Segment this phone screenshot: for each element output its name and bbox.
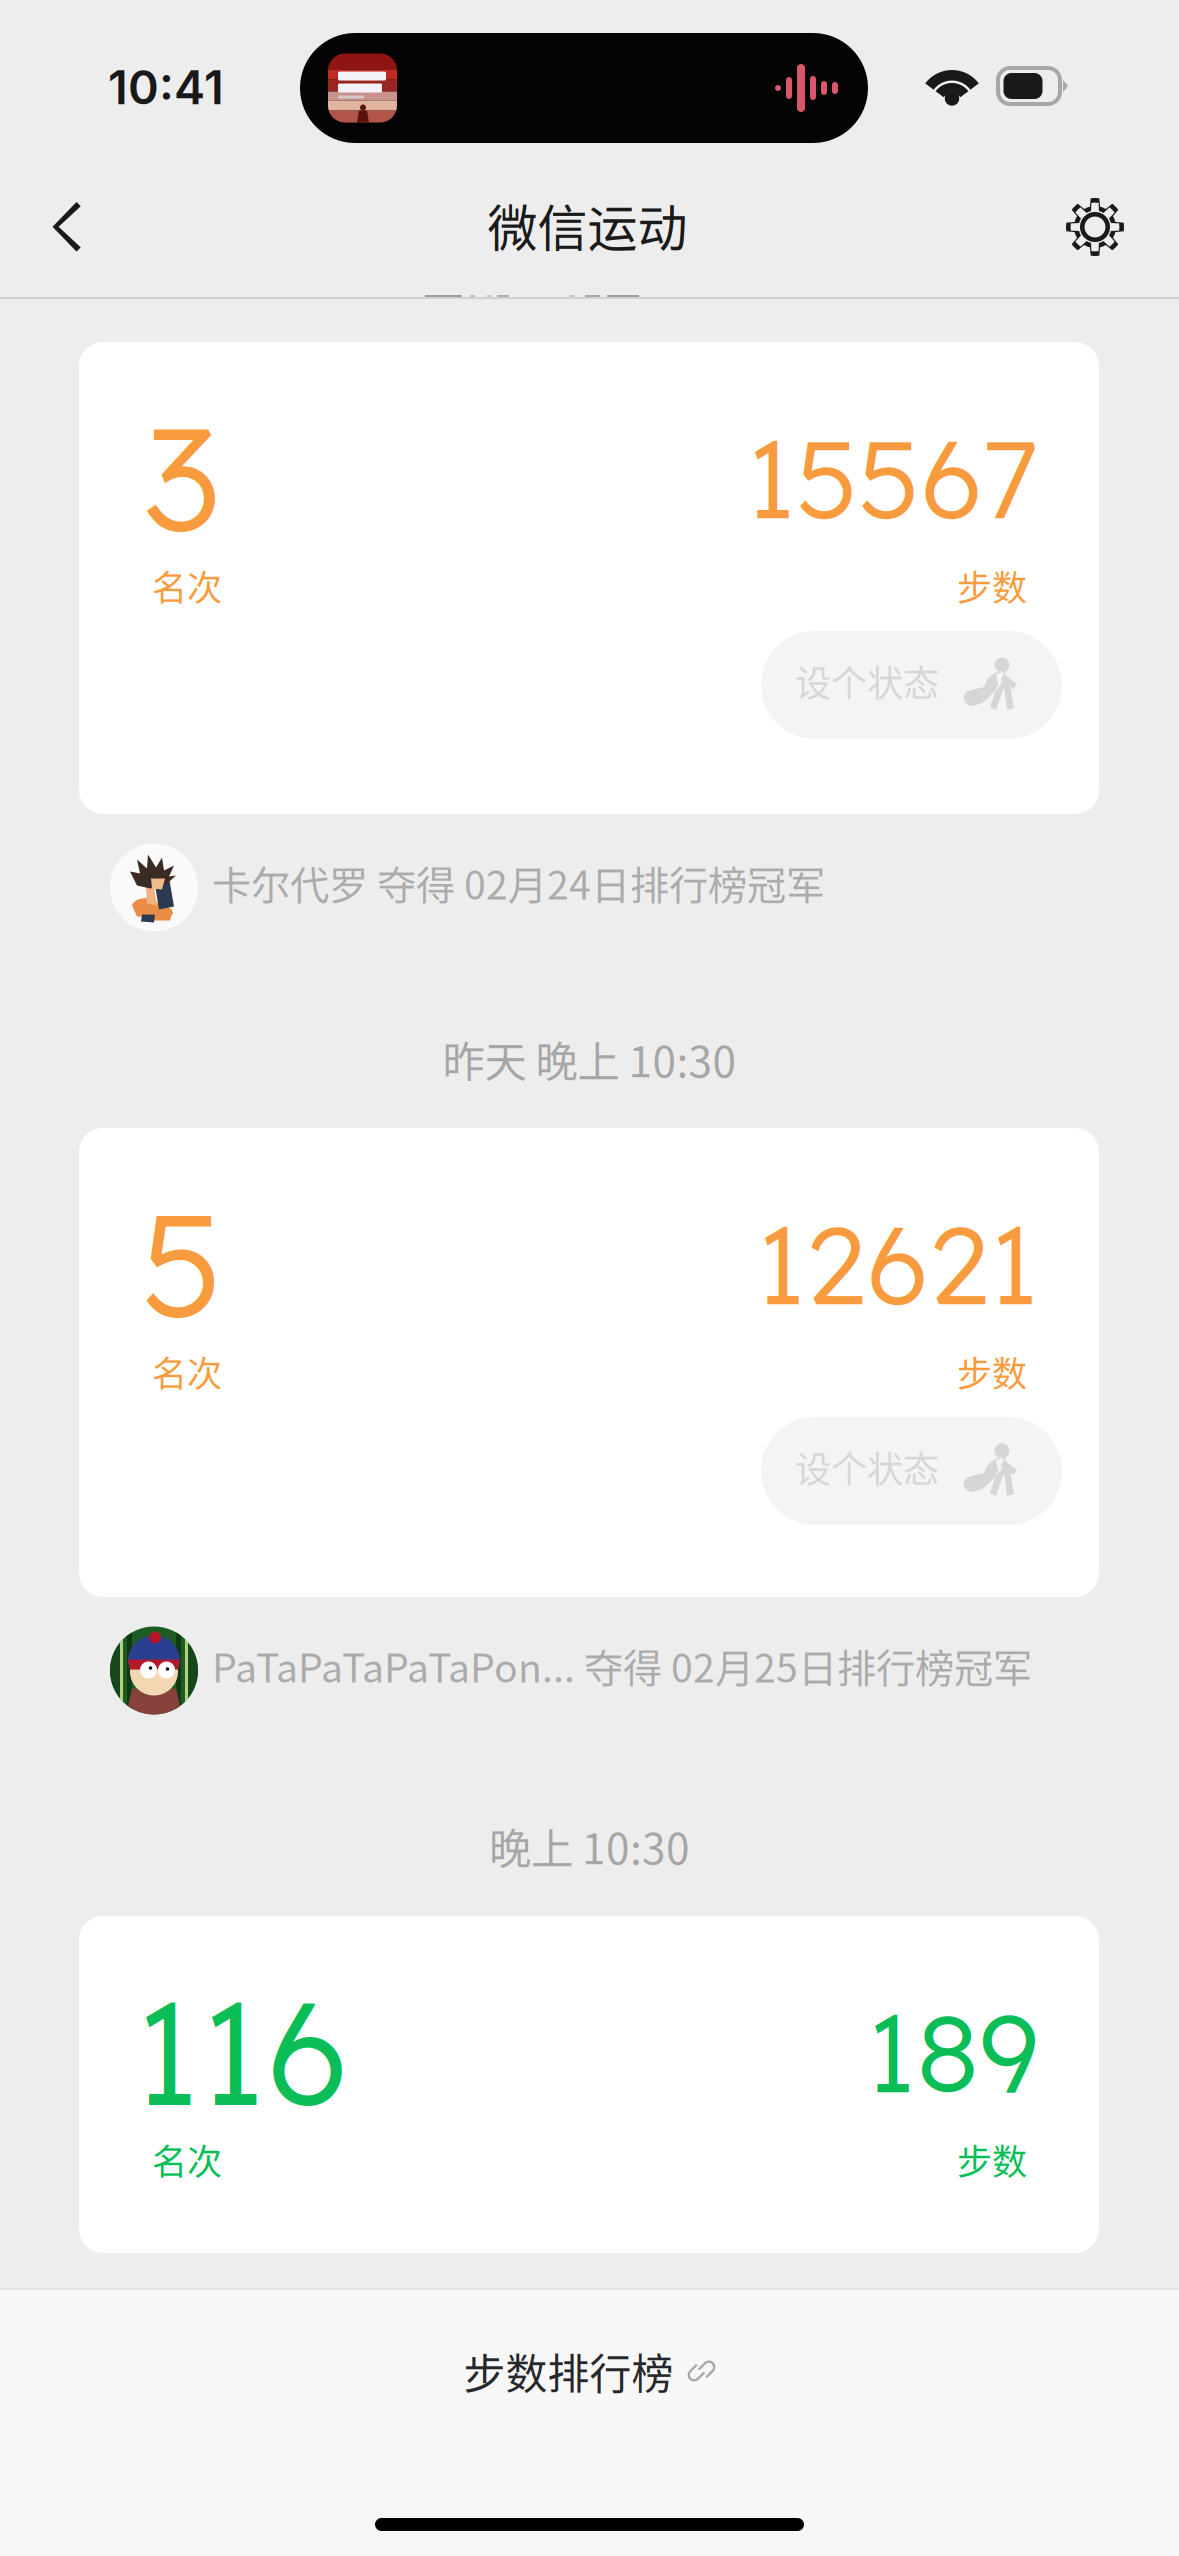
staticText: 5 bbox=[141, 1173, 223, 1353]
button[interactable]: 设个状态 bbox=[761, 1417, 1062, 1525]
button[interactable]: 设置 bbox=[1065, 176, 1179, 294]
button[interactable]: 返回 bbox=[0, 176, 114, 294]
staticText: 步数 bbox=[957, 1346, 1027, 1397]
button[interactable]: PaTaPaTaPaTaPon... 夺得 02月25日排行榜冠军 bbox=[0, 1625, 1179, 1716]
staticText: 名次 bbox=[152, 2134, 222, 2185]
staticText: 昨天 晚上 10:30 bbox=[442, 1028, 736, 1089]
button[interactable]: 卡尔代罗 夺得 02月24日排行榜冠军 bbox=[0, 842, 1179, 933]
staticText: 设个状态 bbox=[795, 655, 939, 707]
staticText: 12621 bbox=[756, 1195, 1039, 1332]
button[interactable] bbox=[79, 1916, 1099, 2253]
staticText: PaTaPaTaPaTaPon... 夺得 02月25日排行榜冠军 bbox=[212, 1637, 1032, 1694]
staticText: 步数 bbox=[957, 560, 1027, 611]
staticText: 设个状态 bbox=[795, 1441, 939, 1493]
staticText: 189 bbox=[866, 1983, 1039, 2120]
staticText: 名次 bbox=[152, 1346, 222, 1397]
button[interactable]: 设个状态 bbox=[761, 631, 1062, 739]
staticText: 116 bbox=[134, 1961, 349, 2141]
button[interactable] bbox=[79, 1128, 1099, 1597]
staticText: 卡尔代罗 夺得 02月24日排行榜冠军 bbox=[212, 854, 825, 911]
staticText: 晚上 10:30 bbox=[489, 1815, 690, 1876]
button[interactable]: 步数排行榜 bbox=[463, 2336, 715, 2406]
staticText: 步数 bbox=[957, 2134, 1027, 2185]
staticText: 步数排行榜 bbox=[463, 2341, 673, 2401]
staticText: 名次 bbox=[152, 560, 222, 611]
staticText: 10:41 bbox=[108, 59, 224, 115]
staticText: 微信运动 bbox=[487, 189, 687, 261]
button[interactable] bbox=[79, 342, 1099, 814]
staticText: 15567 bbox=[746, 409, 1039, 546]
staticText: 3 bbox=[144, 387, 220, 567]
